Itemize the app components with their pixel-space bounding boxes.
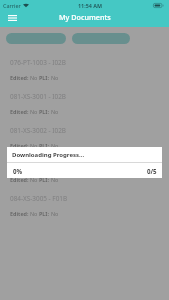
staticText: 076-PT-1003 - I02B [10, 58, 66, 67]
staticText: Downloading Progress... [12, 151, 85, 159]
staticText: No [51, 176, 59, 183]
staticText: Edited: [10, 108, 30, 115]
button[interactable]: 083-XS-3004 - I01B [0, 154, 169, 188]
button[interactable]: Open navigation menu [2, 11, 18, 27]
staticText: Edited: [10, 74, 30, 81]
staticText: PLI: [39, 108, 51, 115]
staticText: No [30, 210, 39, 217]
button[interactable]: 081-XS-3002 - I02B [0, 120, 169, 154]
staticText: 081-XS-3001 - I02B [10, 92, 66, 101]
staticText: No [30, 176, 39, 183]
staticText: PLI: [39, 210, 51, 217]
staticText: Carrier [3, 2, 21, 9]
staticText: No [51, 74, 59, 81]
staticText: No [51, 142, 59, 149]
staticText: My Documents [59, 12, 111, 22]
button[interactable]: 076-PT-1003 - I02B [0, 52, 169, 86]
staticText: Edited: [10, 176, 30, 183]
staticText: No [30, 74, 39, 81]
staticText: Edited: [10, 142, 30, 149]
staticText: PLI: [39, 176, 51, 183]
staticText: 11:54 AM [78, 2, 103, 9]
staticText: 084-XS-3005 - F01B [10, 194, 68, 203]
staticText: PLI: [39, 74, 51, 81]
staticText: No [51, 210, 59, 217]
staticText: 0/5 [147, 167, 157, 175]
button[interactable]: 081-XS-3001 - I02B [0, 86, 169, 120]
button[interactable] [6, 33, 66, 44]
staticText: PLI: [39, 142, 51, 149]
staticText: No [51, 108, 59, 115]
staticText: No [30, 142, 39, 149]
staticText: 0% [13, 167, 23, 175]
staticText: 081-XS-3002 - I02B [10, 126, 66, 135]
button[interactable] [72, 33, 130, 44]
button[interactable]: 084-XS-3005 - F01B [0, 188, 169, 222]
staticText: 083-XS-3004 - I01B [10, 160, 66, 169]
staticText: Edited: [10, 210, 30, 217]
staticText: No [30, 108, 39, 115]
